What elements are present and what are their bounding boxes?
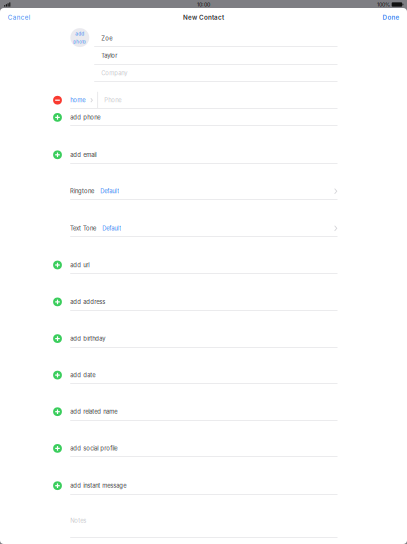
staticText: home bbox=[70, 97, 85, 104]
button[interactable]: add date bbox=[0, 346, 407, 383]
staticText: 10:00 bbox=[197, 1, 210, 8]
button[interactable]: add related name bbox=[0, 383, 407, 420]
button[interactable]: add birthday bbox=[0, 310, 407, 346]
staticText: add url bbox=[70, 261, 89, 269]
staticText: add instant message bbox=[70, 482, 126, 489]
staticText: photo bbox=[73, 39, 86, 44]
button[interactable]: Text Tone bbox=[0, 199, 407, 236]
button[interactable]: add address bbox=[0, 273, 407, 310]
button[interactable]: Ringtone bbox=[0, 181, 407, 199]
staticText: add social profile bbox=[70, 445, 117, 452]
staticText: Default bbox=[100, 188, 119, 195]
staticText: add address bbox=[70, 298, 105, 305]
button[interactable]: add email bbox=[0, 144, 407, 163]
staticText: Text Tone bbox=[70, 225, 96, 232]
staticText: Company bbox=[101, 70, 127, 77]
staticText: 100% bbox=[377, 1, 390, 8]
staticText: Zoe bbox=[101, 35, 112, 42]
staticText: add birthday bbox=[70, 335, 105, 342]
button[interactable]: Done bbox=[373, 8, 407, 26]
staticText: add email bbox=[70, 151, 96, 158]
staticText: Ringtone bbox=[70, 188, 94, 195]
button[interactable]: Add photo bbox=[70, 28, 89, 47]
staticText: New Contact bbox=[183, 14, 224, 21]
staticText: Default bbox=[102, 225, 121, 232]
button[interactable]: Cancel bbox=[0, 8, 44, 26]
staticText: add related name bbox=[70, 408, 117, 415]
staticText: Notes bbox=[70, 517, 86, 524]
staticText: Taylor bbox=[101, 52, 117, 59]
button[interactable]: add url bbox=[0, 236, 407, 273]
staticText: add date bbox=[70, 372, 95, 379]
button[interactable]: add phone bbox=[0, 108, 407, 125]
button[interactable]: add social profile bbox=[0, 420, 407, 456]
staticText: add phone bbox=[70, 114, 100, 121]
staticText: Phone bbox=[104, 97, 121, 104]
staticText: Cancel bbox=[8, 14, 31, 21]
button[interactable]: home bbox=[0, 88, 407, 108]
button[interactable]: add instant message bbox=[0, 456, 407, 494]
staticText: Done bbox=[382, 14, 399, 21]
staticText: add bbox=[75, 31, 84, 37]
